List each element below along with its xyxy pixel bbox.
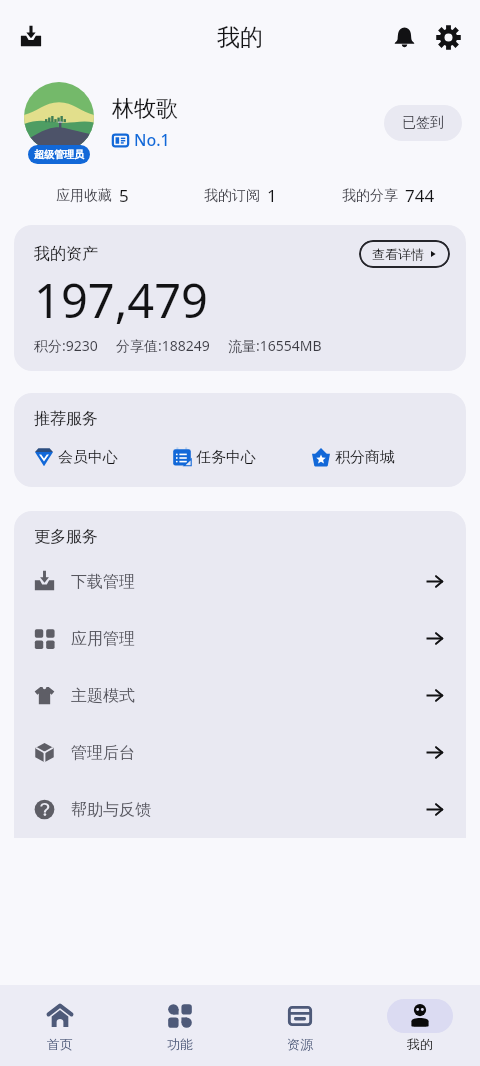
button[interactable]: 应用管理 bbox=[14, 610, 466, 667]
staticText: 推荐服务 bbox=[34, 409, 98, 429]
staticText: 197,479 bbox=[34, 268, 208, 332]
button[interactable]: 已签到 bbox=[384, 105, 462, 141]
button[interactable]: 下载管理 bbox=[14, 553, 466, 610]
button[interactable]: 资源 bbox=[240, 985, 360, 1066]
staticText: 首页 bbox=[47, 1036, 73, 1052]
button[interactable]: Downloads bbox=[12, 18, 50, 56]
button[interactable]: 任务中心 bbox=[172, 447, 311, 467]
staticText: 更多服务 bbox=[34, 527, 98, 547]
button[interactable]: 应用收藏 bbox=[18, 184, 166, 207]
staticText: 帮助与反馈 bbox=[71, 800, 151, 820]
staticText: 流量:16554MB bbox=[228, 336, 322, 355]
staticText: 功能 bbox=[167, 1036, 193, 1052]
button[interactable]: 管理后台 bbox=[14, 724, 466, 781]
staticText: No.1 bbox=[134, 129, 170, 151]
staticText: 我的 bbox=[217, 23, 263, 52]
staticText: 我的订阅 bbox=[204, 187, 260, 205]
button[interactable]: 功能 bbox=[120, 985, 240, 1066]
staticText: 林牧歌 bbox=[112, 95, 178, 123]
button[interactable]: 主题模式 bbox=[14, 667, 466, 724]
staticText: 资源 bbox=[287, 1036, 313, 1052]
button[interactable]: 帮助与反馈 bbox=[14, 781, 466, 838]
staticText: 查看详情 bbox=[372, 246, 424, 262]
staticText: 5 bbox=[119, 184, 129, 207]
staticText: 我的 bbox=[407, 1036, 433, 1052]
staticText: 已签到 bbox=[402, 114, 444, 132]
staticText: 积分:9230 bbox=[34, 336, 98, 355]
staticText: 应用收藏 bbox=[56, 187, 112, 205]
staticText: 积分商城 bbox=[335, 448, 395, 467]
button[interactable]: Notifications bbox=[384, 17, 424, 57]
button[interactable]: 我的分享 bbox=[314, 184, 462, 207]
staticText: 下载管理 bbox=[71, 572, 135, 592]
button[interactable]: Avatar bbox=[18, 82, 100, 164]
button[interactable]: 积分商城 bbox=[311, 447, 450, 467]
button[interactable]: 查看详情 bbox=[359, 240, 450, 268]
staticText: 744 bbox=[405, 184, 435, 207]
staticText: 应用管理 bbox=[71, 629, 135, 649]
button[interactable]: 首页 bbox=[0, 985, 120, 1066]
button[interactable]: 我的订阅 bbox=[166, 184, 314, 207]
button[interactable]: Settings bbox=[428, 17, 468, 57]
staticText: 管理后台 bbox=[71, 743, 135, 763]
button[interactable]: 我的资产 bbox=[14, 225, 466, 371]
button[interactable]: 会员中心 bbox=[34, 447, 172, 467]
staticText: 分享值:188249 bbox=[116, 336, 210, 355]
staticText: 1 bbox=[267, 184, 277, 207]
button[interactable]: 我的 bbox=[360, 985, 480, 1066]
staticText: 会员中心 bbox=[58, 448, 118, 467]
staticText: 超级管理员 bbox=[34, 148, 84, 161]
staticText: 任务中心 bbox=[196, 448, 256, 467]
staticText: 我的资产 bbox=[34, 244, 98, 264]
staticText: 我的分享 bbox=[342, 187, 398, 205]
staticText: 主题模式 bbox=[71, 686, 135, 706]
